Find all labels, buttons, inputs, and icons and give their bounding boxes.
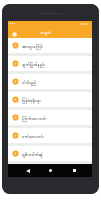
staticText: အာလူးကြော် (22, 44, 43, 50)
staticText: ချက်ပြုတ်နည်း (22, 62, 46, 68)
button[interactable]: Recent apps (69, 165, 80, 176)
staticText: မြန်မာ့ရိုးရာ (22, 98, 41, 104)
button[interactable]: မြန်မာ့ရိုးရာ (8, 92, 92, 107)
button[interactable]: Home (45, 165, 56, 176)
button[interactable]: ကြက်သားဟင်း (8, 110, 92, 125)
button[interactable]: ချက်ပြုတ်နည်း (8, 56, 92, 71)
staticText: ဝက်သားဟင်း (22, 134, 45, 140)
staticText: အချက် (40, 30, 52, 36)
button[interactable]: ငါးပိရည် (8, 74, 92, 89)
button[interactable]: ဝက်သားဟင်း (8, 128, 92, 143)
staticText: ရှမ်းခေါက်ဆွဲ (22, 152, 43, 158)
staticText: ငါးပိရည် (22, 80, 37, 86)
button[interactable]: Open navigation menu (9, 29, 19, 39)
button[interactable]: Back (22, 165, 33, 176)
button[interactable]: ရှမ်းခေါက်ဆွဲ (8, 146, 92, 161)
button[interactable]: အာလူးကြော် (8, 38, 92, 53)
staticText: ကြက်သားဟင်း (22, 116, 47, 122)
